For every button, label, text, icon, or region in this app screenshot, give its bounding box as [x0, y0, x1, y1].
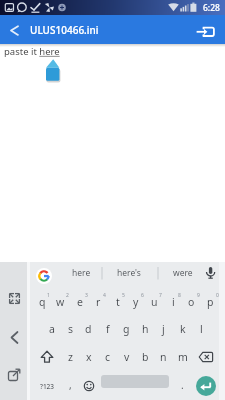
button[interactable]: here	[61, 265, 101, 281]
staticText: z	[68, 350, 73, 364]
staticText: j	[162, 322, 165, 336]
button[interactable]: b	[136, 344, 155, 370]
button[interactable]	[36, 346, 58, 369]
button[interactable]: i	[164, 289, 183, 315]
staticText: 8	[178, 292, 181, 299]
button[interactable]	[195, 375, 217, 397]
staticText: y	[133, 295, 139, 309]
staticText: i	[172, 295, 175, 309]
staticText: g	[123, 322, 130, 336]
button[interactable]: y	[126, 289, 145, 315]
button[interactable]: z	[61, 344, 80, 370]
button[interactable]: m	[173, 344, 192, 370]
button[interactable]: .	[173, 372, 191, 398]
staticText: 0	[216, 292, 219, 299]
staticText: q	[39, 295, 46, 309]
button[interactable]: e	[70, 289, 89, 315]
button[interactable]: c	[98, 344, 117, 370]
staticText: 9	[197, 292, 200, 299]
button[interactable]	[4, 327, 25, 348]
staticText: ?123	[40, 382, 55, 391]
staticText: s	[68, 322, 74, 336]
button[interactable]	[202, 264, 219, 282]
staticText: 3	[85, 292, 88, 299]
button[interactable]: p	[201, 289, 220, 315]
staticText: r	[96, 295, 101, 309]
staticText: 7	[159, 292, 162, 299]
staticText: 4	[103, 292, 106, 299]
staticText: .	[181, 378, 184, 392]
button[interactable]: x	[79, 344, 98, 370]
button[interactable]: o	[182, 289, 201, 315]
staticText: were	[173, 267, 193, 279]
button[interactable]: t	[108, 289, 127, 315]
button[interactable]: h	[136, 316, 155, 342]
button[interactable]: a	[42, 316, 61, 342]
button[interactable]: v	[117, 344, 136, 370]
staticText: f	[106, 322, 110, 336]
staticText: c	[105, 350, 111, 364]
staticText: 6:28	[203, 2, 220, 14]
staticText: ULUS10466.ini	[30, 23, 99, 37]
button[interactable]	[4, 364, 25, 385]
button[interactable]: n	[154, 344, 173, 370]
staticText: n	[160, 350, 167, 364]
button[interactable]: f	[98, 316, 117, 342]
staticText: t	[116, 295, 120, 309]
staticText: 2	[66, 292, 69, 299]
button[interactable]: k	[173, 316, 192, 342]
button[interactable]: d	[79, 316, 98, 342]
staticText: a	[49, 322, 55, 336]
staticText: v	[124, 350, 130, 364]
staticText: ,	[69, 378, 72, 392]
staticText: l	[200, 322, 203, 336]
staticText: b	[142, 350, 149, 364]
button[interactable]: ?123	[33, 373, 61, 399]
button[interactable]	[36, 268, 52, 284]
button[interactable]: were	[163, 265, 203, 281]
button[interactable]: r	[89, 289, 108, 315]
button[interactable]: here's	[107, 265, 151, 281]
button[interactable]	[43, 56, 63, 82]
staticText: x	[86, 350, 92, 364]
button[interactable]: w	[51, 289, 70, 315]
button[interactable]	[79, 375, 99, 397]
staticText: here's	[117, 267, 141, 279]
staticText: paste it here	[4, 45, 60, 58]
button[interactable]	[4, 288, 25, 309]
staticText: e	[77, 295, 83, 309]
button[interactable]: g	[117, 316, 136, 342]
staticText: o	[188, 295, 195, 309]
button[interactable]: paste it here	[4, 45, 60, 58]
staticText: k	[180, 322, 186, 336]
button[interactable]: q	[33, 289, 52, 315]
staticText: m	[178, 350, 188, 364]
staticText: 1	[47, 292, 50, 299]
button[interactable]: l	[192, 316, 211, 342]
staticText: w	[56, 295, 65, 309]
button[interactable]: j	[154, 316, 173, 342]
staticText: 6	[141, 292, 144, 299]
button[interactable]: u	[145, 289, 164, 315]
staticText: u	[151, 295, 158, 309]
button[interactable]: ,	[61, 372, 79, 398]
button[interactable]	[195, 346, 217, 369]
staticText: d	[85, 322, 92, 336]
button[interactable]: s	[61, 316, 80, 342]
staticText: 5	[122, 292, 125, 299]
staticText: p	[207, 295, 214, 309]
staticText: h	[142, 322, 149, 336]
button[interactable]	[193, 18, 221, 42]
staticText: here	[72, 267, 91, 279]
button[interactable]	[4, 19, 26, 41]
